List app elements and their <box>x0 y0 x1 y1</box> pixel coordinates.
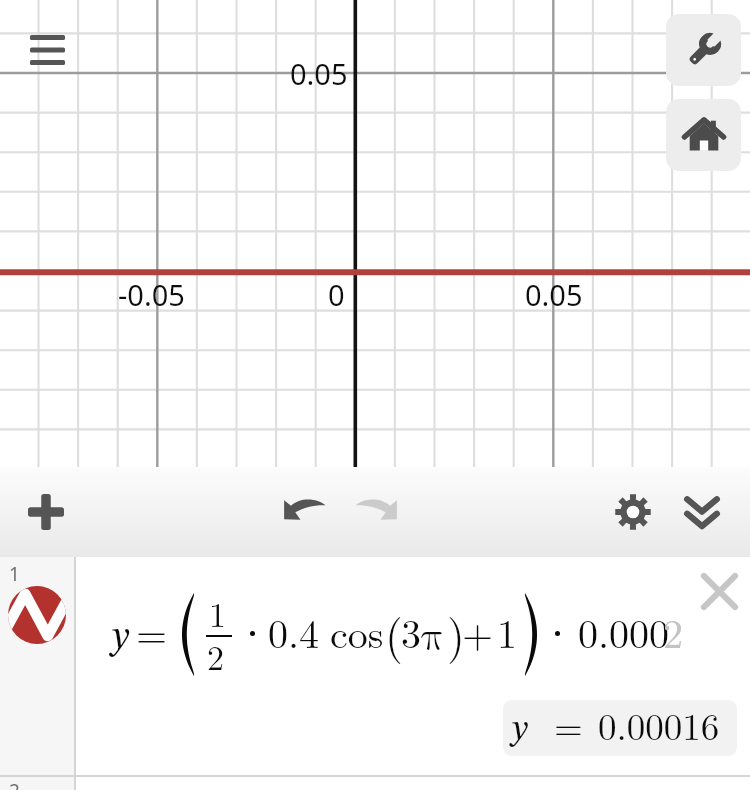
staticText: 1 <box>497 603 517 660</box>
button[interactable]: y <box>503 700 737 756</box>
staticText: 0.000 <box>578 603 670 660</box>
staticText: π <box>421 617 445 657</box>
staticText: = <box>136 603 168 660</box>
staticText: 0 <box>328 275 345 314</box>
button[interactable]: Collapse keypad <box>660 470 744 554</box>
staticText: 0.05 <box>525 275 583 314</box>
button[interactable]: Undo <box>261 466 347 552</box>
button[interactable]: Home <box>666 99 741 171</box>
staticText: 2 <box>9 778 20 790</box>
staticText: = <box>554 700 583 750</box>
button[interactable]: Delete expression <box>688 560 750 622</box>
staticText: 1 <box>9 561 20 587</box>
staticText: -0.05 <box>118 275 185 314</box>
button[interactable]: Toggle graph visibility <box>8 586 66 644</box>
staticText: y <box>512 712 529 748</box>
button[interactable]: Redo <box>333 466 419 552</box>
staticText: ( <box>385 600 403 665</box>
button[interactable]: Add expression <box>6 472 86 552</box>
staticText: 2 <box>207 632 224 680</box>
button[interactable]: Settings <box>591 470 675 554</box>
button[interactable]: Menu <box>14 20 80 80</box>
button[interactable]: y <box>76 557 750 775</box>
staticText: 0.4 <box>268 603 320 660</box>
staticText: 2 <box>663 603 683 660</box>
staticText: 1 <box>209 589 226 637</box>
staticText: cos <box>330 603 384 660</box>
button[interactable]: Graph settings <box>666 14 741 86</box>
staticText: + <box>462 603 494 660</box>
staticText: 3 <box>401 603 421 660</box>
staticText: y <box>112 618 130 657</box>
staticText: 0.05 <box>290 54 348 93</box>
staticText: 0.00016 <box>598 700 720 750</box>
staticText: ) <box>447 600 465 665</box>
